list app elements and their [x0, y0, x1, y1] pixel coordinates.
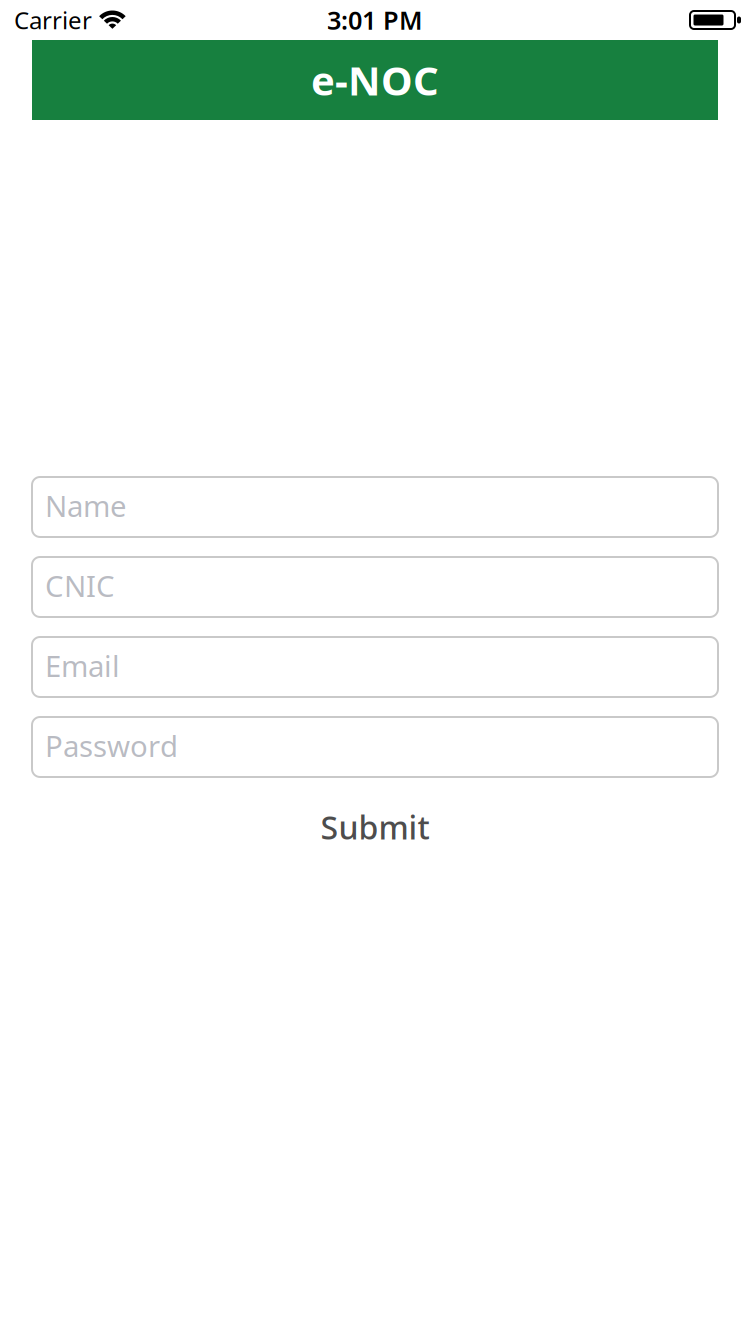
button[interactable]: Password: [32, 717, 718, 777]
staticText: Password: [45, 726, 178, 765]
staticText: CNIC: [45, 566, 115, 605]
button[interactable]: Submit: [32, 797, 718, 857]
button[interactable]: Name: [32, 477, 718, 537]
staticText: Name: [45, 486, 127, 525]
staticText: 3:01 PM: [327, 3, 423, 37]
button[interactable]: CNIC: [32, 557, 718, 617]
staticText: Submit: [320, 806, 429, 848]
staticText: e-NOC: [311, 53, 439, 106]
staticText: Carrier: [14, 4, 92, 36]
button[interactable]: Email: [32, 637, 718, 697]
staticText: Email: [45, 646, 120, 685]
